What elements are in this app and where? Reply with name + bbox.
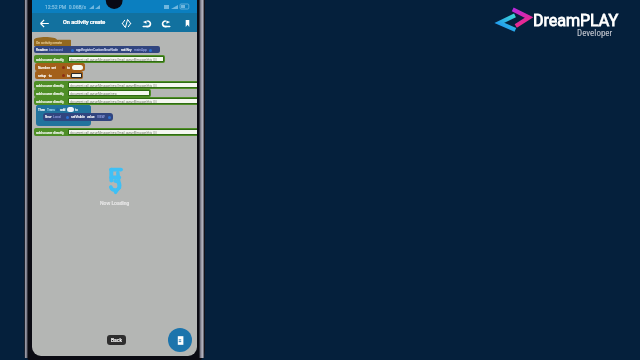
staticText: VIEW: [97, 115, 105, 119]
button[interactable]: Redo: [160, 17, 173, 30]
staticText: to: [67, 74, 70, 78]
staticText: appRegisterCustomNewNode: [76, 48, 119, 52]
staticText: add source directly: [36, 100, 64, 104]
staticText: not Key: [121, 48, 132, 52]
staticText: Trans: [47, 108, 55, 112]
staticText: setup to: [38, 74, 52, 78]
staticText: backward: [49, 48, 63, 52]
staticText: Then: [38, 108, 46, 112]
button[interactable]: Code: [120, 17, 133, 30]
button[interactable]: add source directly: [34, 55, 165, 63]
button[interactable]: On activity create: [34, 36, 71, 46]
staticText: Back: [111, 337, 122, 343]
staticText: add source directly: [36, 92, 64, 96]
staticText: to: [75, 108, 78, 112]
button[interactable]: Readme: [34, 46, 160, 53]
staticText: document.call.queueMessage(new Email.que…: [70, 58, 158, 62]
button[interactable]: add source directly: [34, 81, 197, 89]
button[interactable]: Back: [107, 335, 126, 345]
staticText: On activity create: [63, 19, 106, 25]
staticText: add source directly: [36, 58, 64, 62]
staticText: Now Loading: [100, 200, 130, 206]
staticText: Developer: [577, 28, 613, 39]
staticText: Number set: [38, 66, 56, 70]
staticText: document.call.queueMessage(new Email.que…: [70, 100, 158, 104]
button[interactable]: [36, 105, 91, 126]
staticText: document.call.queueMessage(new Email.que…: [70, 92, 150, 96]
button[interactable]: Number set: [35, 63, 85, 71]
staticText: New: [45, 115, 52, 119]
button[interactable]: Bookmark: [181, 17, 194, 30]
staticText: add: [60, 108, 66, 112]
button[interactable]: Run: [168, 328, 192, 352]
staticText: On activity create: [36, 41, 63, 45]
staticText: document.call.queueMessage(new Email.que…: [70, 84, 158, 88]
staticText: document.call.queueMessage(new Email.que…: [70, 131, 158, 135]
button[interactable]: add source directly: [34, 97, 197, 105]
staticText: Local: [53, 115, 61, 119]
button[interactable]: add source directly: [34, 128, 197, 136]
staticText: add source directly: [36, 131, 64, 135]
staticText: 12:52 PM 0.06B/s: [45, 4, 87, 10]
button[interactable]: add source directly: [34, 89, 151, 97]
staticText: DreamPLAY: [533, 11, 619, 30]
staticText: add source directly: [36, 84, 64, 88]
staticText: mainApp: [134, 48, 147, 52]
button[interactable]: Undo: [140, 17, 153, 30]
staticText: setVisible: [71, 115, 85, 119]
staticText: value: [87, 115, 95, 119]
button[interactable]: setup to: [35, 71, 83, 79]
button[interactable]: Back: [38, 17, 51, 30]
staticText: to: [67, 66, 70, 70]
button[interactable]: New: [43, 113, 113, 121]
staticText: Readme: [36, 48, 48, 52]
